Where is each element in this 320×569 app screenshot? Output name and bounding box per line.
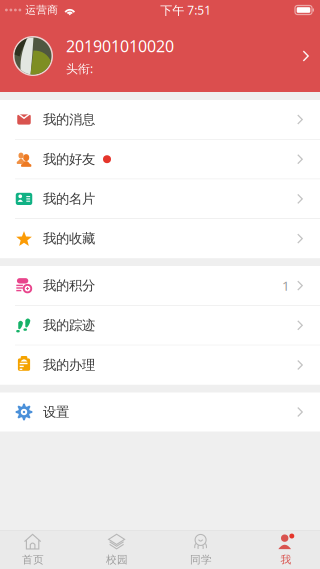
staticText: 1 bbox=[282, 277, 290, 294]
button[interactable]: 我的踪迹 bbox=[0, 306, 320, 345]
staticText: 同学 bbox=[190, 553, 212, 566]
staticText: 我的名片 bbox=[43, 191, 95, 207]
button[interactable]: 同学 bbox=[172, 531, 230, 569]
staticText: 设置 bbox=[43, 404, 69, 420]
staticText: 我的踪迹 bbox=[43, 317, 95, 333]
staticText: 头衔: bbox=[66, 61, 93, 77]
staticText: 我的消息 bbox=[43, 111, 95, 128]
button[interactable]: 设置 bbox=[0, 392, 320, 431]
button[interactable]: 首页 bbox=[4, 531, 62, 569]
staticText: 校园 bbox=[106, 553, 128, 566]
staticText: 我的办理 bbox=[43, 357, 95, 373]
staticText: 我的积分 bbox=[43, 277, 95, 294]
staticText: 我 bbox=[280, 553, 291, 566]
button[interactable]: 我的收藏 bbox=[0, 219, 320, 258]
button[interactable]: 校园 bbox=[88, 531, 146, 569]
staticText: 我的好友 bbox=[43, 151, 95, 167]
staticText: 首页 bbox=[22, 553, 44, 566]
staticText: 下午 7:51 bbox=[160, 2, 211, 18]
staticText: 201901010020 bbox=[66, 35, 174, 57]
button[interactable]: 我的好友 bbox=[0, 140, 320, 179]
button[interactable]: 我的办理 bbox=[0, 345, 320, 384]
staticText: 我的收藏 bbox=[43, 230, 95, 247]
button[interactable]: 我 bbox=[257, 531, 315, 569]
button[interactable]: 我的积分 bbox=[0, 266, 320, 305]
button[interactable]: 我的消息 bbox=[0, 100, 320, 139]
button[interactable]: 201901010020 bbox=[0, 20, 320, 92]
button[interactable]: 我的名片 bbox=[0, 179, 320, 218]
staticText: 运营商 bbox=[25, 3, 58, 16]
